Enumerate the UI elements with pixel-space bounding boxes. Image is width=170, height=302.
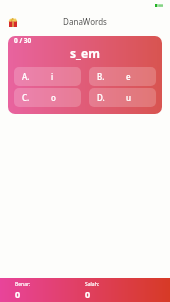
staticText: B. bbox=[97, 71, 105, 82]
button[interactable]: C. bbox=[14, 88, 81, 107]
staticText: D. bbox=[97, 92, 105, 103]
staticText: 0 / 30 bbox=[14, 36, 32, 45]
other: App logo bbox=[9, 17, 17, 27]
staticText: i bbox=[51, 71, 54, 82]
staticText: e bbox=[126, 71, 131, 82]
staticText: o bbox=[51, 92, 56, 103]
staticText: A. bbox=[22, 71, 30, 82]
staticText: u bbox=[126, 92, 132, 103]
other: Status icons bbox=[155, 4, 163, 7]
button[interactable]: A. bbox=[14, 67, 81, 86]
staticText: Salah: bbox=[85, 281, 100, 288]
staticText: C. bbox=[22, 92, 30, 103]
staticText: DanaWords bbox=[0, 16, 170, 27]
button[interactable]: B. bbox=[89, 67, 156, 86]
staticText: Benar: bbox=[15, 281, 31, 288]
staticText: 0 bbox=[85, 288, 91, 300]
staticText: 0 bbox=[15, 288, 21, 300]
staticText: s_em bbox=[14, 45, 156, 61]
button[interactable]: Benar: bbox=[15, 278, 85, 300]
button[interactable]: D. bbox=[89, 88, 156, 107]
button[interactable]: Salah: bbox=[85, 278, 155, 300]
